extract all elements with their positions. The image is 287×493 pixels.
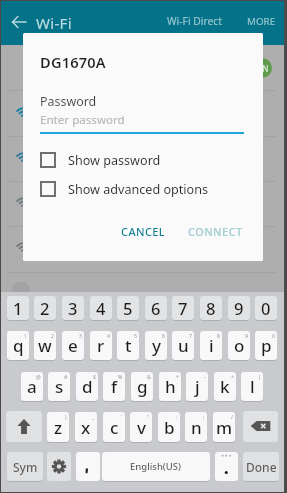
button[interactable]: 2	[34, 296, 56, 320]
button[interactable]: e	[62, 331, 84, 360]
button[interactable]: t	[117, 331, 139, 360]
staticText: Done	[246, 459, 277, 475]
button[interactable]: 8	[200, 296, 222, 320]
button[interactable]: Navigate up	[6, 9, 32, 35]
staticText: 3	[79, 332, 82, 339]
button[interactable]: v	[130, 412, 152, 442]
button[interactable]: 6	[145, 296, 167, 320]
staticText: )	[65, 413, 67, 420]
button[interactable]: Sym	[7, 452, 43, 481]
button[interactable]: h	[159, 372, 181, 401]
button[interactable]: m	[213, 412, 235, 442]
staticText: l	[250, 375, 255, 398]
staticText: r	[97, 334, 105, 357]
staticText: 0	[272, 332, 275, 339]
button[interactable]: Backspace	[243, 411, 278, 442]
staticText: -	[204, 373, 206, 380]
button[interactable]: MORE	[240, 10, 282, 32]
button[interactable]: 9	[228, 296, 250, 320]
staticText: '	[121, 413, 123, 420]
button[interactable]: w	[34, 331, 56, 360]
staticText: DG1670A	[40, 52, 106, 72]
staticText: Show advanced options	[68, 181, 209, 198]
staticText: Wi-Fi Direct	[167, 14, 222, 28]
staticText: b	[164, 416, 175, 439]
staticText: m	[216, 416, 233, 439]
staticText: j	[195, 375, 200, 398]
button[interactable]: Done	[243, 452, 279, 481]
staticText: c	[110, 416, 119, 439]
button[interactable]: 4	[90, 296, 112, 320]
staticText: 6	[151, 297, 161, 319]
button[interactable]: o	[228, 331, 250, 360]
button[interactable]: 1	[7, 296, 29, 320]
button[interactable]: Comma	[76, 452, 100, 481]
button[interactable]: Shift	[6, 411, 42, 442]
staticText: "	[147, 413, 150, 420]
button[interactable]: y	[145, 331, 167, 360]
staticText: k	[220, 375, 230, 398]
staticText: CONNECT	[188, 224, 243, 239]
button[interactable]: Wi-Fi Direct	[158, 10, 230, 32]
button[interactable]: u	[172, 331, 194, 360]
staticText: &	[147, 373, 151, 380]
staticText: 1	[24, 332, 27, 339]
button[interactable]: 3	[62, 296, 84, 320]
button[interactable]: CONNECT	[183, 219, 247, 243]
button[interactable]: s	[48, 372, 70, 401]
staticText: q	[13, 334, 24, 357]
button[interactable]: English(US)	[102, 452, 210, 481]
staticText: 4	[96, 297, 106, 319]
button[interactable]: q	[7, 331, 29, 360]
staticText: Enter password	[40, 112, 125, 128]
button[interactable]: d	[76, 372, 98, 401]
button[interactable]: Show password	[40, 150, 246, 170]
button[interactable]: 5	[117, 296, 139, 320]
button[interactable]: Show advanced options	[40, 179, 246, 199]
button[interactable]: 0	[255, 296, 277, 320]
button[interactable]: g	[131, 372, 153, 401]
staticText: Show password	[68, 152, 161, 169]
staticText: #	[64, 373, 68, 380]
button[interactable]: a	[21, 372, 43, 401]
staticText: 8	[217, 332, 220, 339]
staticText: 1	[13, 297, 23, 319]
staticText: CANCEL	[121, 224, 166, 239]
button[interactable]: r	[90, 331, 112, 360]
staticText: t	[125, 334, 132, 357]
button[interactable]: i	[200, 331, 222, 360]
staticText: u	[178, 334, 189, 357]
button[interactable]: CANCEL	[115, 219, 171, 243]
button[interactable]: Period	[215, 452, 238, 481]
staticText: 5	[134, 332, 137, 339]
staticText: 3	[68, 297, 78, 319]
staticText: o	[234, 334, 245, 357]
button[interactable]: k	[214, 372, 236, 401]
button[interactable]: ON	[252, 58, 272, 78]
button[interactable]: x	[75, 412, 97, 442]
button[interactable]: f	[103, 372, 125, 401]
button[interactable]: z	[47, 412, 69, 442]
staticText: $	[93, 373, 96, 380]
staticText: English(US)	[130, 460, 182, 473]
staticText: 9	[234, 297, 244, 319]
button[interactable]: Settings	[47, 452, 71, 481]
button[interactable]: l	[241, 372, 263, 401]
button[interactable]: n	[185, 412, 207, 442]
button[interactable]: p	[255, 331, 277, 360]
staticText: i	[209, 334, 214, 357]
button[interactable]: j	[186, 372, 208, 401]
staticText: (	[259, 373, 261, 380]
button[interactable]: b	[158, 412, 180, 442]
staticText: 2	[40, 297, 50, 319]
staticText: ON	[256, 63, 269, 74]
staticText: *	[176, 373, 179, 380]
staticText: x	[81, 416, 91, 439]
staticText: d	[82, 375, 93, 398]
button[interactable]: c	[103, 412, 125, 442]
staticText: ;	[203, 413, 205, 420]
staticText: h	[165, 375, 176, 398]
staticText: 5	[123, 297, 133, 319]
staticText: a	[27, 375, 37, 398]
button[interactable]: 7	[172, 296, 194, 320]
